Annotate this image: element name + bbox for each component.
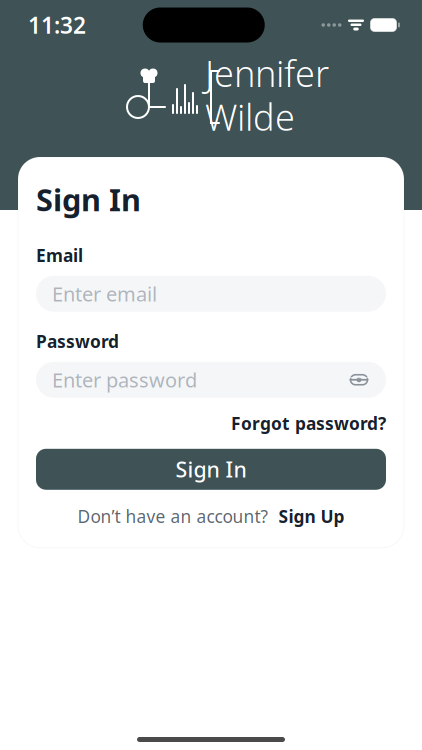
staticText: Sign Up bbox=[278, 505, 344, 528]
staticText: Sign In bbox=[175, 455, 246, 483]
staticText: Sign In bbox=[36, 179, 141, 220]
staticText: 11:32 bbox=[28, 10, 86, 40]
staticText: Enter password bbox=[52, 366, 197, 393]
staticText: Password bbox=[36, 330, 119, 353]
button[interactable]: Sign Up bbox=[278, 505, 344, 528]
button[interactable]: Forgot password? bbox=[231, 407, 386, 440]
staticText: Email bbox=[36, 244, 83, 267]
staticText: Jennifer bbox=[205, 49, 329, 97]
staticText: Enter email bbox=[52, 280, 157, 307]
button[interactable]: Sign In bbox=[36, 449, 386, 490]
button[interactable]: Enter email bbox=[36, 276, 386, 312]
staticText: Forgot password? bbox=[231, 412, 386, 435]
button[interactable]: Password field, show password bbox=[36, 362, 386, 398]
staticText: Don’t have an account? bbox=[77, 505, 278, 528]
staticText: Wilde bbox=[205, 93, 295, 141]
